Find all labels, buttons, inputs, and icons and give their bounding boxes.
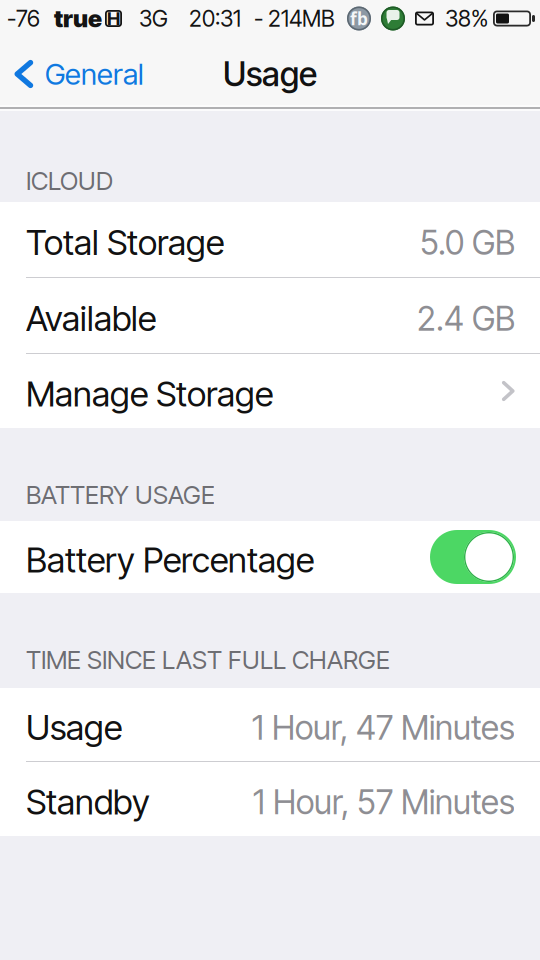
staticText: Usage [26,706,122,748]
staticText: 5.0 GB [420,222,515,263]
staticText: Manage Storage [26,373,273,415]
staticText: 1 Hour, 47 Minutes [252,707,515,748]
staticText: fb [350,7,368,30]
staticText: BATTERY USAGE [26,479,215,510]
button[interactable]: Manage Storage [0,354,540,428]
staticText: General [45,56,144,92]
staticText: Total Storage [26,221,224,263]
staticText: TIME SINCE LAST FULL CHARGE [26,644,390,675]
staticText: - 214MB [254,5,335,32]
staticText: true [54,4,102,33]
staticText: Usage [223,54,317,94]
staticText: 1 Hour, 57 Minutes [253,782,515,822]
staticText: Standby [26,781,150,823]
button[interactable]: Battery Percentage [430,530,516,584]
button[interactable]: General [0,37,156,111]
staticText: H [107,7,120,30]
staticText: 20:31 [189,5,241,32]
staticText: Available [26,297,156,339]
staticText: ICLOUD [26,165,113,196]
staticText: 38% [445,5,488,32]
staticText: 3G [139,5,168,32]
staticText: 2.4 GB [417,298,515,339]
staticText: -76 [7,5,40,32]
staticText: Battery Percentage [26,539,314,581]
